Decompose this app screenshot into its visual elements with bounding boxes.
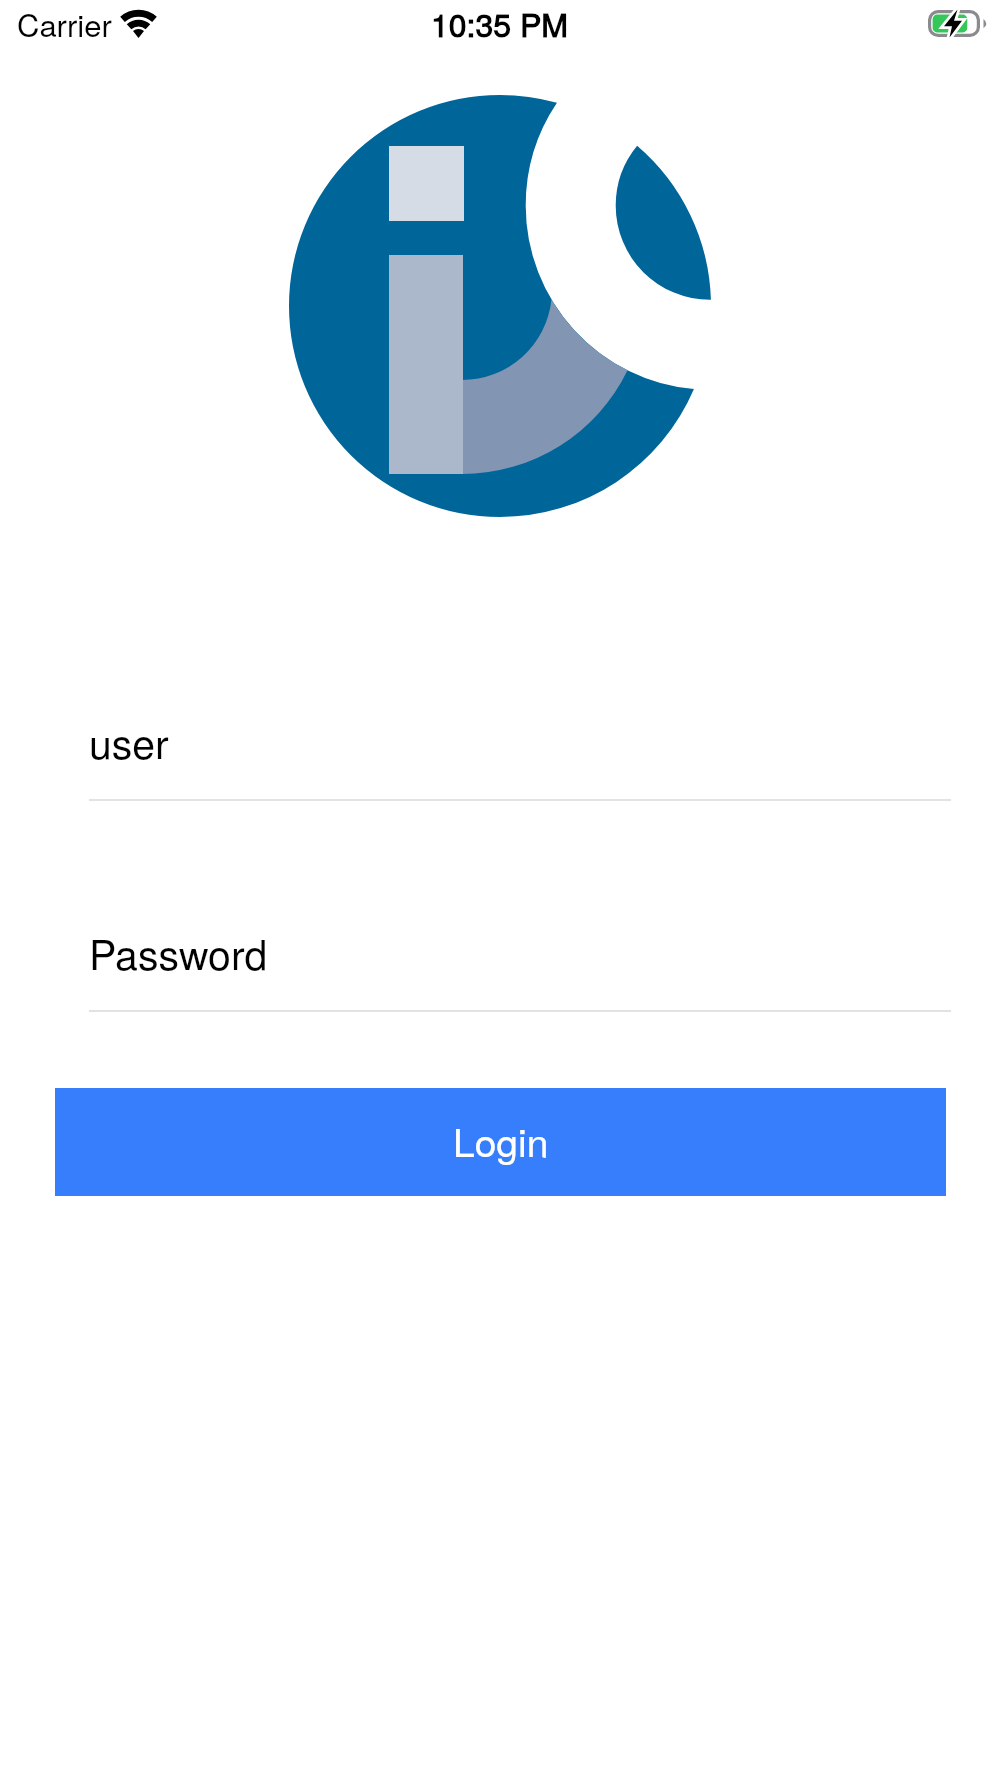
staticText: Password: [89, 923, 268, 982]
button[interactable]: Login: [55, 1088, 946, 1196]
button[interactable]: user: [89, 704, 951, 801]
other: Battery charging: [928, 10, 988, 38]
staticText: Login: [453, 1112, 549, 1168]
other: Wi-Fi: [119, 5, 159, 40]
staticText: user: [89, 712, 169, 771]
staticText: Carrier: [17, 1, 112, 45]
staticText: 10:35 PM: [431, 0, 568, 46]
button[interactable]: Password: [89, 915, 951, 1012]
